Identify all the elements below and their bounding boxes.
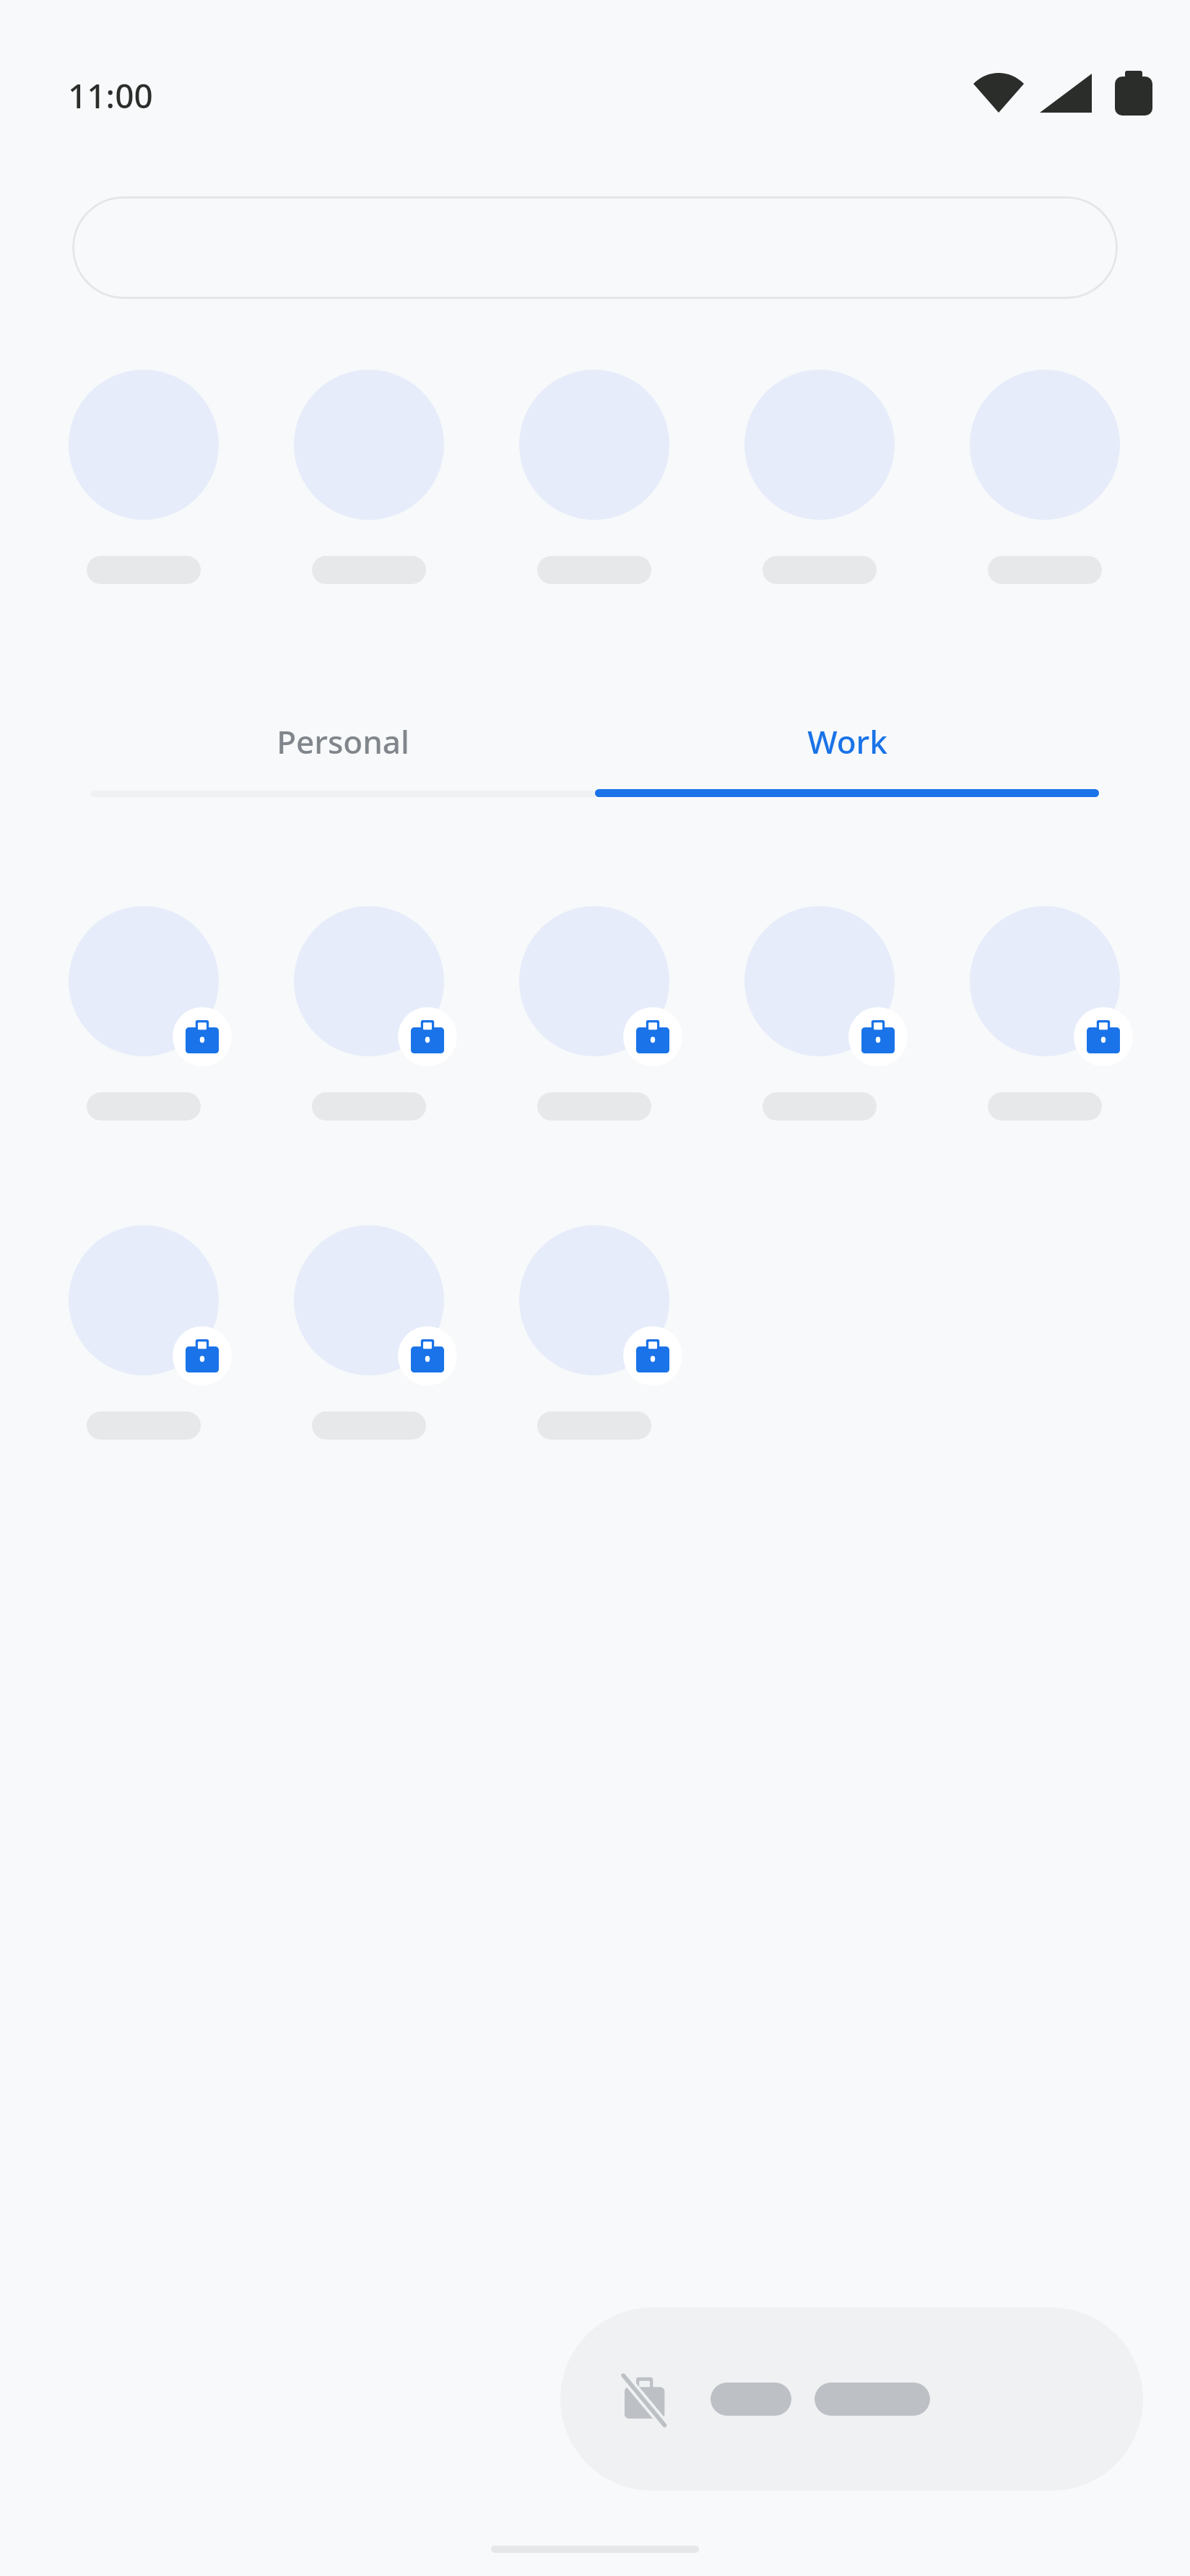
button[interactable]: App xyxy=(274,1217,464,1448)
button[interactable]: Personal xyxy=(91,693,595,790)
other: Turn off work apps xyxy=(617,2369,677,2429)
staticText: Work xyxy=(807,720,887,763)
button[interactable]: App xyxy=(724,361,915,592)
button[interactable]: App xyxy=(48,897,239,1128)
staticText: 11:00 xyxy=(68,73,153,118)
button[interactable]: App xyxy=(499,361,690,592)
button[interactable]: App xyxy=(724,897,915,1128)
button[interactable]: App xyxy=(950,897,1140,1128)
staticText: Personal xyxy=(277,720,409,763)
button[interactable]: App xyxy=(950,361,1140,592)
button[interactable]: App xyxy=(499,897,690,1128)
button[interactable]: App xyxy=(274,361,464,592)
button[interactable]: App xyxy=(499,1217,690,1448)
button[interactable]: App xyxy=(48,361,239,592)
button[interactable]: App xyxy=(274,897,464,1128)
button[interactable]: Search xyxy=(72,196,1118,299)
button[interactable]: Turn off work apps xyxy=(560,2307,1143,2491)
button[interactable]: Work xyxy=(595,693,1099,790)
button[interactable]: App xyxy=(48,1217,239,1448)
